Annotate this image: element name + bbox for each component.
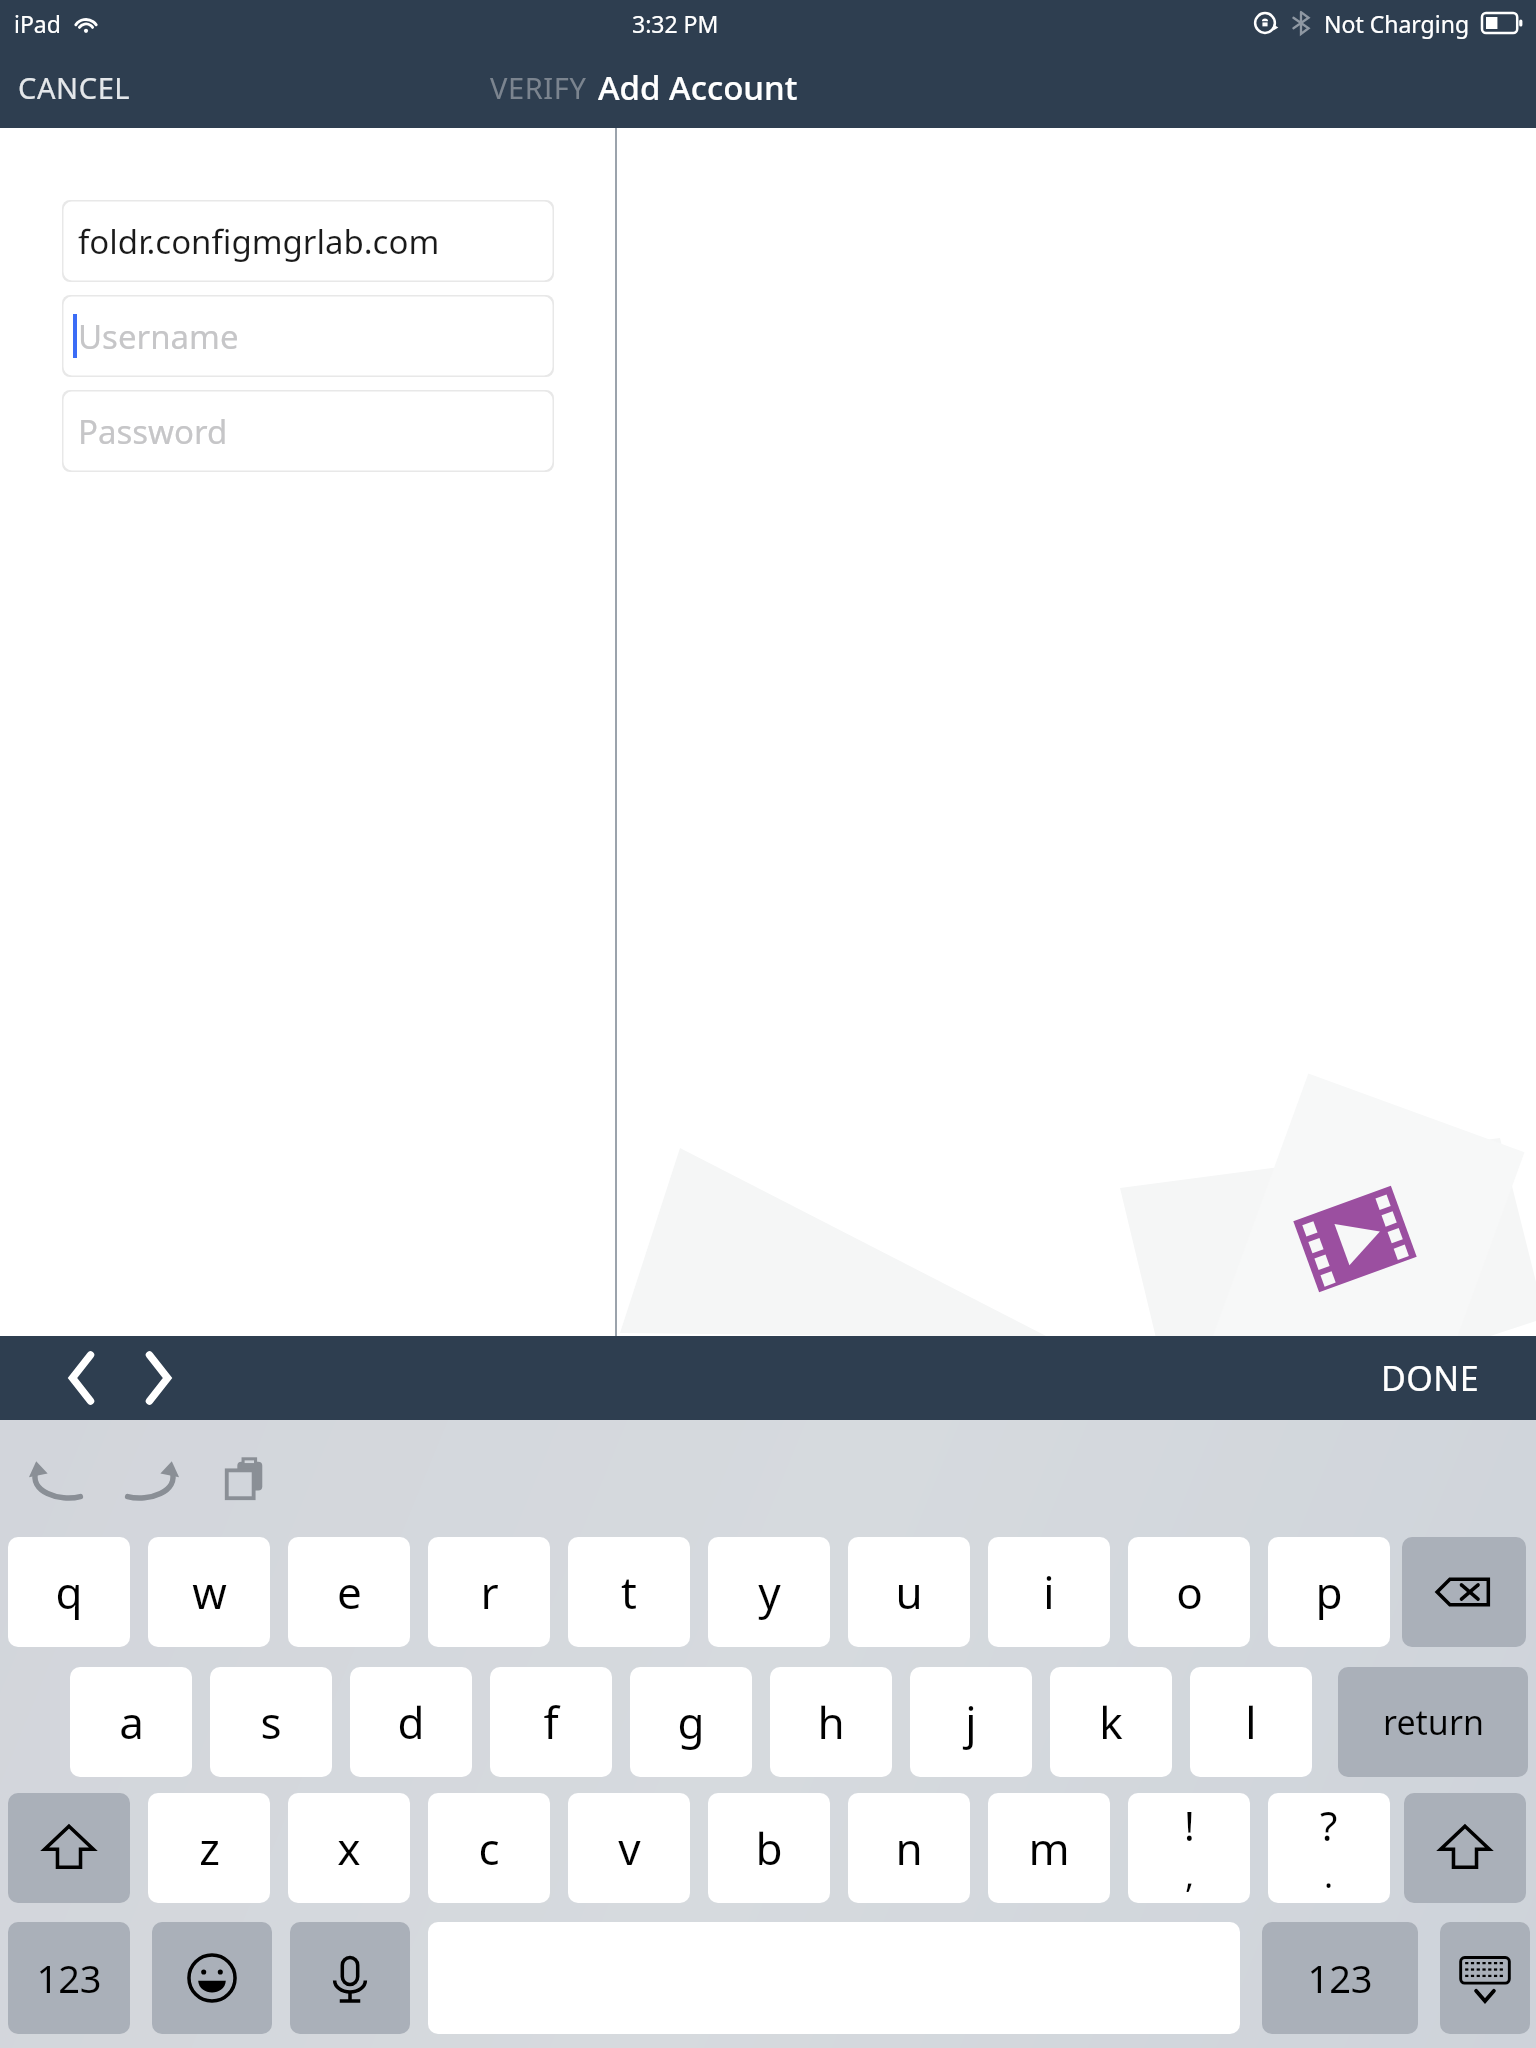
staticText: . (1324, 1852, 1334, 1898)
staticText: q (55, 1562, 83, 1622)
button[interactable]: u (848, 1537, 970, 1647)
button[interactable]: Backspace (1402, 1537, 1526, 1647)
staticText: foldr.configmgrlab.com (78, 219, 440, 264)
button[interactable]: k (1050, 1667, 1172, 1777)
staticText: c (478, 1818, 500, 1878)
button[interactable]: p (1268, 1537, 1390, 1647)
staticText: , (1185, 1852, 1195, 1898)
button[interactable]: x (288, 1793, 410, 1903)
staticText: return (1383, 1699, 1484, 1745)
button[interactable]: Paste (210, 1444, 280, 1514)
staticText: h (817, 1692, 845, 1752)
button[interactable]: DONE (1369, 1347, 1492, 1409)
button[interactable]: y (708, 1537, 830, 1647)
staticText: DONE (1381, 1355, 1480, 1401)
staticText: i (1043, 1562, 1055, 1622)
staticText: s (260, 1692, 282, 1752)
button[interactable]: Username (62, 295, 554, 377)
button[interactable]: CANCEL (4, 58, 145, 117)
staticText: l (1245, 1692, 1257, 1752)
staticText: v (618, 1818, 641, 1878)
staticText: d (397, 1692, 425, 1752)
staticText: j (965, 1692, 977, 1752)
staticText: r (480, 1562, 499, 1622)
button[interactable]: i (988, 1537, 1110, 1647)
button[interactable]: d (350, 1667, 472, 1777)
staticText: b (755, 1818, 783, 1878)
staticText: Not Charging (1324, 8, 1470, 39)
staticText: ! (1184, 1798, 1195, 1852)
button[interactable]: f (490, 1667, 612, 1777)
button[interactable]: b (708, 1793, 830, 1903)
button[interactable]: r (428, 1537, 550, 1647)
button[interactable]: v (568, 1793, 690, 1903)
button[interactable]: Undo (22, 1444, 92, 1514)
staticText: k (1099, 1692, 1123, 1752)
staticText: w (192, 1562, 227, 1622)
button[interactable]: foldr.configmgrlab.com (62, 200, 554, 282)
button[interactable]: Next field (126, 1346, 190, 1410)
button[interactable]: Shift (1404, 1793, 1526, 1903)
button[interactable]: q (8, 1537, 130, 1647)
button[interactable]: Previous field (50, 1346, 114, 1410)
button[interactable]: z (148, 1793, 270, 1903)
button[interactable]: t (568, 1537, 690, 1647)
button[interactable]: n (848, 1793, 970, 1903)
staticText: 123 (36, 1952, 102, 2004)
staticText: e (337, 1562, 362, 1622)
button[interactable]: m (988, 1793, 1110, 1903)
staticText: VERIFY (490, 68, 587, 107)
staticText: ? (1320, 1798, 1338, 1852)
staticText: a (119, 1692, 144, 1752)
staticText: z (199, 1818, 220, 1878)
button[interactable]: Shift (8, 1793, 130, 1903)
staticText: p (1315, 1562, 1343, 1622)
button[interactable]: e (288, 1537, 410, 1647)
staticText: o (1176, 1562, 1203, 1622)
button[interactable]: w (148, 1537, 270, 1647)
button[interactable]: Hide keyboard (1440, 1922, 1530, 2034)
staticText: y (758, 1562, 781, 1622)
button[interactable]: 123 (1262, 1922, 1418, 2034)
staticText: n (895, 1818, 923, 1878)
staticText: t (621, 1562, 637, 1622)
button[interactable]: l (1190, 1667, 1312, 1777)
staticText: iPad (14, 8, 61, 39)
staticText: m (1028, 1818, 1070, 1878)
button[interactable]: g (630, 1667, 752, 1777)
staticText: Password (78, 409, 228, 454)
button[interactable]: o (1128, 1537, 1250, 1647)
staticText: 3:32 PM (632, 8, 719, 39)
button[interactable]: c (428, 1793, 550, 1903)
button[interactable]: 123 (8, 1922, 130, 2034)
button[interactable]: Dictation (290, 1922, 410, 2034)
staticText: CANCEL (18, 68, 131, 107)
button[interactable]: Redo (116, 1444, 186, 1514)
button[interactable]: Emoji (152, 1922, 272, 2034)
staticText: u (895, 1562, 923, 1622)
button[interactable]: return (1338, 1667, 1528, 1777)
staticText: 123 (1307, 1952, 1373, 2004)
staticText: Username (78, 314, 239, 359)
button[interactable]: ! (1128, 1793, 1250, 1903)
staticText: g (677, 1692, 705, 1752)
button[interactable]: ? (1268, 1793, 1390, 1903)
staticText: Add Account (598, 65, 798, 110)
button[interactable]: VERIFY (478, 58, 599, 117)
button[interactable]: j (910, 1667, 1032, 1777)
button[interactable]: s (210, 1667, 332, 1777)
button[interactable]: h (770, 1667, 892, 1777)
staticText: x (337, 1818, 361, 1878)
button[interactable]: Password (62, 390, 554, 472)
staticText: f (543, 1692, 559, 1752)
button[interactable]: a (70, 1667, 192, 1777)
